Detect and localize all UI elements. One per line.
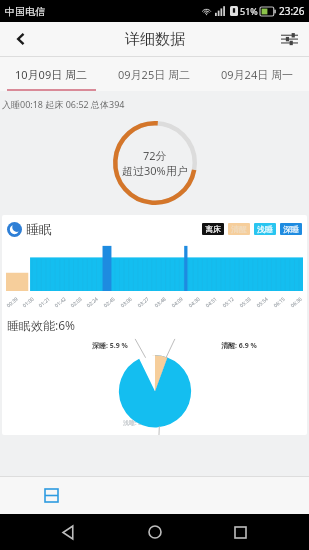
staticText: 浅睡: 87.2 %	[123, 419, 157, 427]
staticText: 03:06	[119, 296, 134, 309]
staticText: 05:54	[255, 296, 270, 309]
staticText: 睡眠效能:6%	[7, 317, 76, 333]
button[interactable]: 离床	[205, 224, 221, 234]
button[interactable]: Back	[52, 515, 86, 549]
staticText: 05:12	[221, 296, 236, 309]
button[interactable]: 09月25日 周二	[103, 57, 206, 91]
staticText: 入睡00:18 起床 06:52 总体394	[2, 98, 125, 110]
staticText: 01:00	[21, 296, 36, 309]
button[interactable]: 清醒	[231, 224, 247, 234]
staticText: 浅睡	[257, 224, 273, 234]
button[interactable]: Home	[138, 515, 172, 549]
staticText: 06:15	[272, 296, 287, 309]
staticText: 中国电信	[5, 5, 45, 18]
staticText: 00:39	[5, 296, 20, 309]
staticText: 超过30%用户	[122, 163, 188, 178]
staticText: 04:30	[187, 296, 202, 309]
staticText: 02:45	[102, 296, 117, 309]
staticText: 详细数据	[125, 30, 185, 49]
staticText: 09月24日 周一	[221, 67, 294, 82]
staticText: 清醒: 6.9 %	[221, 341, 257, 351]
button[interactable]: Day view	[36, 480, 66, 510]
button[interactable]: Settings	[269, 22, 309, 56]
button[interactable]: 09月24日 周一	[206, 57, 309, 91]
staticText: 10月09日 周二	[15, 67, 88, 82]
staticText: 05:33	[238, 296, 253, 309]
staticText: 清醒	[231, 224, 247, 234]
staticText: 02:03	[69, 296, 84, 309]
staticText: 01:21	[37, 296, 52, 309]
staticText: 51%	[240, 5, 258, 17]
staticText: 深睡: 5.9 %	[92, 341, 128, 351]
staticText: 睡眠	[26, 221, 52, 237]
staticText: 06:36	[289, 296, 304, 309]
staticText: 72分	[143, 148, 167, 163]
staticText: 23:26	[279, 4, 305, 18]
staticText: 09月25日 周二	[118, 67, 191, 82]
staticText: 02:24	[85, 296, 100, 309]
staticText: 离床	[205, 224, 221, 234]
button[interactable]: Back	[0, 22, 42, 56]
button[interactable]: 浅睡	[257, 224, 273, 234]
staticText: 04:09	[170, 296, 185, 309]
button[interactable]: 10月09日 周二	[0, 57, 103, 91]
staticText: 01:42	[53, 296, 68, 309]
button[interactable]: Recents	[223, 515, 257, 549]
staticText: 03:27	[136, 296, 151, 309]
button[interactable]: 深睡	[283, 224, 299, 234]
staticText: 03:48	[153, 296, 168, 309]
staticText: 深睡	[283, 224, 299, 234]
staticText: 04:51	[204, 296, 219, 309]
